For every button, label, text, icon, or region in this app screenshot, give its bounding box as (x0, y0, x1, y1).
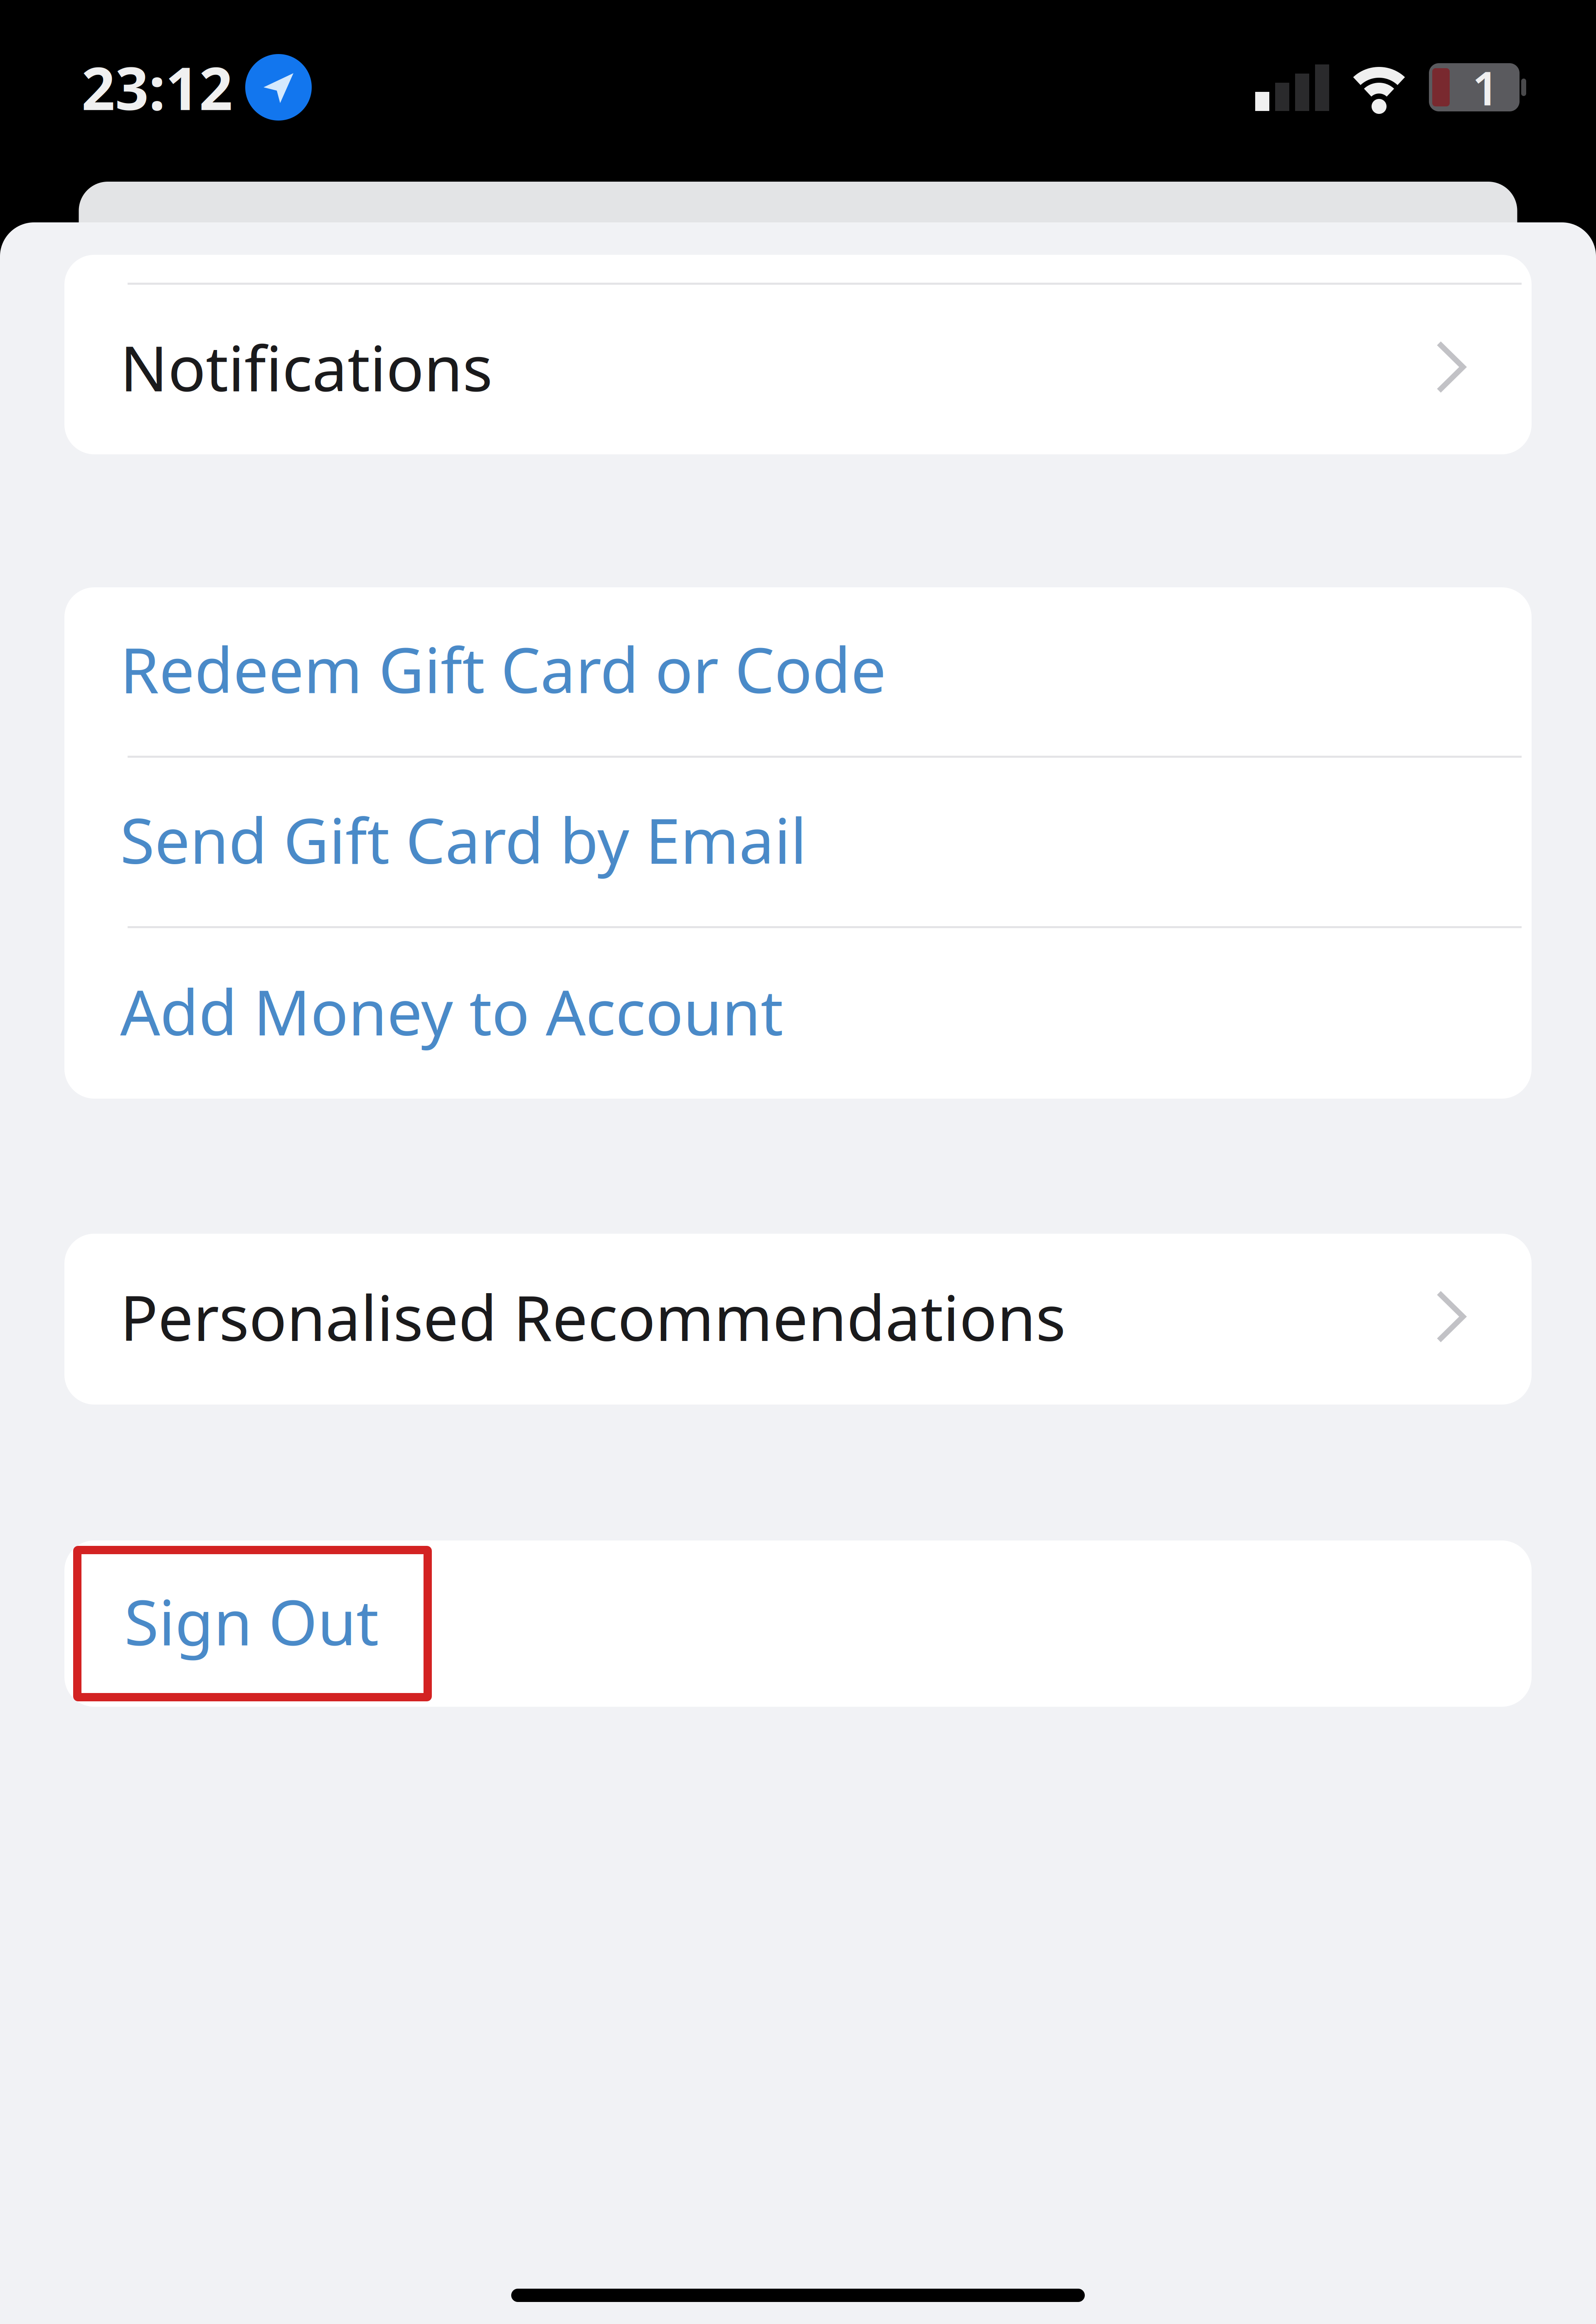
staticText: Add Money to Account (120, 970, 783, 1053)
staticText: Send Gift Card by Email (120, 798, 807, 881)
button[interactable]: Add Money to Account (64, 928, 1532, 1099)
button[interactable]: Send Gift Card by Email (64, 758, 1532, 926)
staticText: 1 (1472, 56, 1499, 118)
staticText: Redeem Gift Card or Code (120, 627, 886, 710)
staticText: Personalised Recommendations (120, 1275, 1066, 1358)
button[interactable]: Personalised Recommendations (64, 1234, 1532, 1405)
staticText: Sign Out (124, 1580, 379, 1663)
button[interactable]: Notifications (64, 255, 1532, 454)
staticText: Notifications (120, 325, 493, 409)
button[interactable]: Redeem Gift Card or Code (64, 587, 1532, 756)
staticText: 23:12 (81, 48, 233, 126)
button[interactable]: Sign Out (77, 1550, 428, 1697)
